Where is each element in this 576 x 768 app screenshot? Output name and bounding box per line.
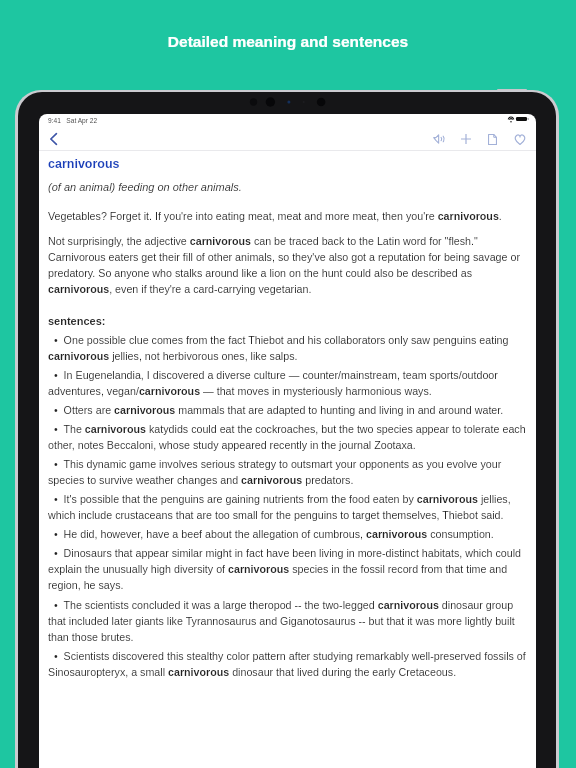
staticText: • It's possible that the penguins are ga… (48, 490, 526, 522)
button[interactable]: Add (452, 127, 479, 151)
staticText: (of an animal) feeding on other animals. (48, 178, 242, 194)
staticText: Detailed meaning and sentences (0, 33, 576, 50)
staticText: sentences: (48, 312, 106, 328)
button[interactable]: Back (41, 127, 65, 151)
button[interactable]: Listen (425, 127, 452, 151)
staticText: carnivorous (48, 155, 120, 171)
staticText: Vegetables? Forget it. If you're into ea… (48, 207, 502, 223)
button[interactable]: Favorite (506, 127, 533, 151)
staticText: • Otters are carnivorous mammals that ar… (48, 401, 504, 417)
staticText: Not surprisingly, the adjective carnivor… (48, 232, 526, 296)
staticText: • Dinosaurs that appear similar might in… (48, 544, 526, 592)
staticText: 9:41 Sat Apr 22 (48, 116, 98, 125)
staticText: • The carnivorous katydids could eat the… (48, 420, 526, 452)
staticText: • One possible clue comes from the fact … (48, 331, 526, 363)
staticText: • In Eugenelandia, I discovered a divers… (48, 366, 526, 398)
staticText: • Scientists discovered this stealthy co… (48, 647, 526, 679)
staticText: • This dynamic game involves serious str… (48, 455, 526, 487)
staticText: • The scientists concluded it was a larg… (48, 596, 526, 644)
button[interactable]: Notes (479, 127, 506, 151)
staticText: • He did, however, have a beef about the… (48, 525, 494, 541)
